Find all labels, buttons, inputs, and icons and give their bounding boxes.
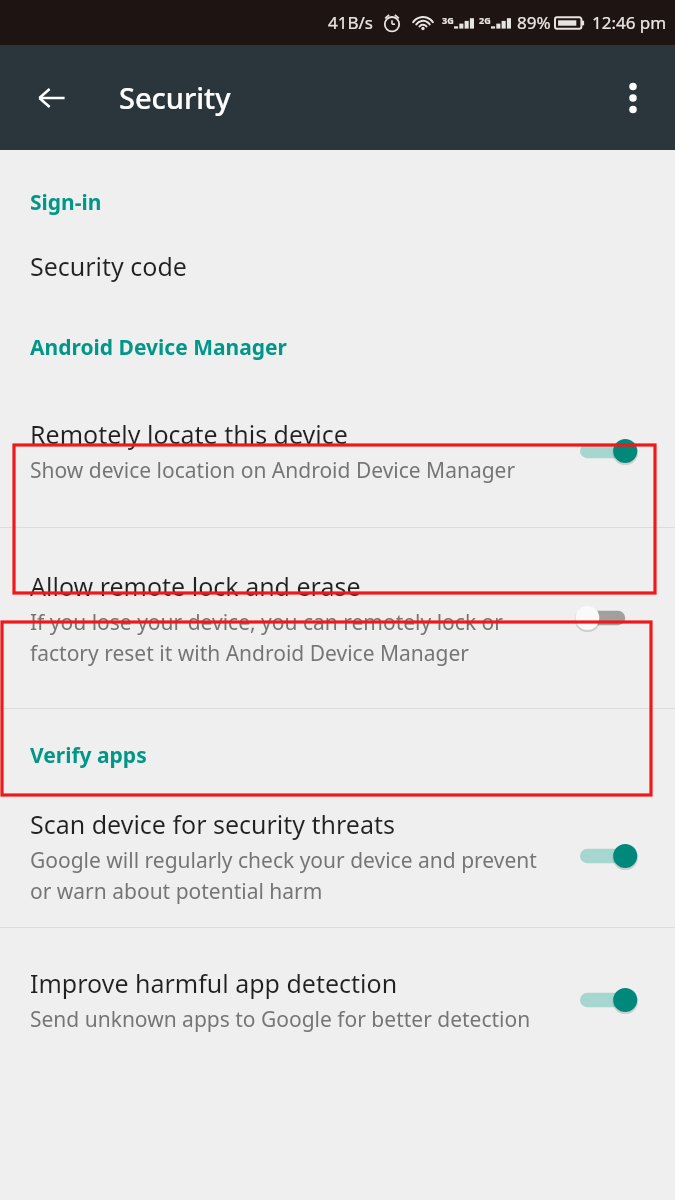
button[interactable]: Scan device for security threats on <box>573 826 645 886</box>
staticText: Allow remote lock and erase <box>30 569 361 603</box>
button[interactable]: Improve harmful app detection on <box>573 970 645 1030</box>
button[interactable]: More options <box>607 72 659 124</box>
button[interactable]: Security code <box>0 217 675 315</box>
staticText: 3G <box>442 14 454 26</box>
staticText: Sign-in <box>30 188 102 217</box>
button[interactable]: Back <box>26 72 78 124</box>
staticText: 12:46 pm <box>592 11 667 34</box>
button[interactable]: Remotely locate this device <box>0 375 675 527</box>
button[interactable]: Improve harmful app detection <box>0 928 675 1071</box>
staticText: Send unknown apps to Google for better d… <box>30 1005 531 1034</box>
staticText: Google will regularly check your device … <box>30 846 557 905</box>
staticText: Android Device Manager <box>30 333 287 362</box>
staticText: Verify apps <box>30 741 147 770</box>
button[interactable]: Allow remote lock and erase <box>0 528 675 708</box>
staticText: Remotely locate this device <box>30 417 348 451</box>
staticText: 41B/s <box>328 11 373 34</box>
button[interactable]: Allow remote lock and erase off <box>573 588 645 648</box>
staticText: 89% <box>517 11 551 34</box>
button[interactable]: Remotely locate this device on <box>573 421 645 481</box>
staticText: Security code <box>30 249 187 283</box>
staticText: 2G <box>479 14 491 26</box>
staticText: Security <box>119 78 231 117</box>
staticText: If you lose your device, you can remotel… <box>30 608 557 667</box>
button[interactable]: Scan device for security threats <box>0 784 675 927</box>
staticText: Show device location on Android Device M… <box>30 456 516 485</box>
staticText: Improve harmful app detection <box>30 966 398 1000</box>
staticText: Scan device for security threats <box>30 807 395 841</box>
